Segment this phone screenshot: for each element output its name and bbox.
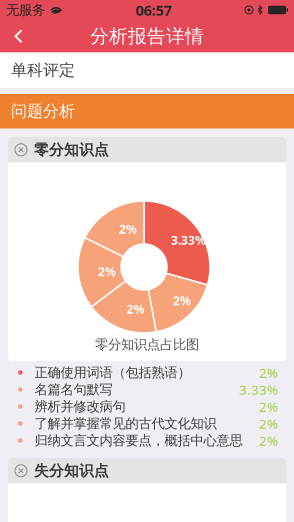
staticText: 2% bbox=[126, 301, 144, 317]
staticText: 名篇名句默写 bbox=[34, 381, 112, 398]
staticText: 分析报告详情 bbox=[90, 25, 204, 48]
staticText: 2% bbox=[119, 221, 137, 237]
button[interactable]: 单科评定 bbox=[0, 52, 294, 88]
staticText: 2% bbox=[259, 415, 278, 432]
staticText: 归纳文言文内容要点，概括中心意思 bbox=[34, 432, 242, 449]
staticText: 2% bbox=[259, 432, 278, 449]
staticText: 问题分析 bbox=[11, 101, 75, 121]
staticText: 2% bbox=[259, 398, 278, 415]
staticText: 失分知识点 bbox=[34, 462, 109, 480]
button[interactable]: 问题分析 bbox=[0, 94, 294, 128]
staticText: 单科评定 bbox=[11, 60, 75, 80]
staticText: 零分知识点占比图 bbox=[95, 336, 199, 353]
staticText: 了解并掌握常见的古代文化知识 bbox=[34, 415, 216, 432]
staticText: 3.33% bbox=[239, 381, 278, 398]
button[interactable]: Back bbox=[0, 20, 37, 53]
staticText: 2% bbox=[173, 292, 191, 308]
staticText: 3.33% bbox=[171, 232, 206, 248]
staticText: 零分知识点 bbox=[34, 141, 109, 159]
staticText: 辨析并修改病句 bbox=[34, 398, 125, 415]
staticText: 正确使用词语（包括熟语） bbox=[34, 364, 190, 381]
staticText: 2% bbox=[98, 263, 116, 279]
staticText: 无服务 bbox=[6, 2, 45, 18]
staticText: 06:57 bbox=[135, 0, 171, 20]
staticText: 2% bbox=[259, 364, 278, 381]
